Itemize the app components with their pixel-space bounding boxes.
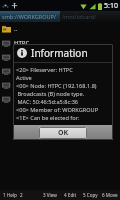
staticText: HTPC	[14, 39, 30, 47]
staticText: 5:10	[104, 1, 118, 11]
button[interactable]: ..	[0, 22, 120, 36]
button[interactable]: 4 Edit	[60, 190, 80, 200]
staticText: OK	[58, 128, 69, 138]
staticText: /mnt/sdcard/	[62, 13, 96, 20]
staticText: Broadcasts (B) node type.	[16, 90, 111, 98]
staticText: 6 Move	[102, 192, 118, 198]
button[interactable]	[0, 92, 120, 106]
staticText: smb://WORKGROUP/	[2, 13, 56, 20]
staticText: ..	[14, 25, 18, 33]
button[interactable]: 1 Help	[0, 190, 20, 200]
staticText: 2 Rename	[20, 192, 40, 198]
staticText: 1 Help	[3, 192, 17, 198]
button[interactable]: /mnt/sdcard/	[60, 11, 120, 22]
button[interactable]: 5 Copy	[80, 190, 100, 200]
staticText: <20> Fileserver: HTPC	[16, 66, 111, 74]
button[interactable]	[0, 50, 120, 64]
staticText: 3 View	[43, 192, 57, 198]
button[interactable]: 6 Move	[100, 190, 120, 200]
button[interactable]: 2 Rename	[20, 190, 40, 200]
staticText: Information	[31, 46, 88, 60]
button[interactable]	[0, 64, 120, 78]
staticText: Active	[16, 74, 111, 82]
staticText: MAC: 50:46:5d:a5:8c:36	[16, 98, 111, 106]
button[interactable]: 3 View	[40, 190, 60, 200]
button[interactable]	[0, 78, 120, 92]
staticText: <00> Member of: WORKGROUP	[16, 106, 111, 114]
button[interactable]: HTPC	[0, 36, 120, 50]
staticText: <1E> Can be elected for: WORKGROUP	[16, 114, 111, 122]
button[interactable]: smb://WORKGROUP/	[0, 11, 60, 22]
staticText: 4 Edit	[64, 192, 77, 198]
button[interactable]: OK	[39, 127, 87, 139]
staticText: 5 Copy	[83, 192, 98, 198]
staticText: <00> Node: HTPC (192.168.1.8)	[16, 82, 111, 90]
